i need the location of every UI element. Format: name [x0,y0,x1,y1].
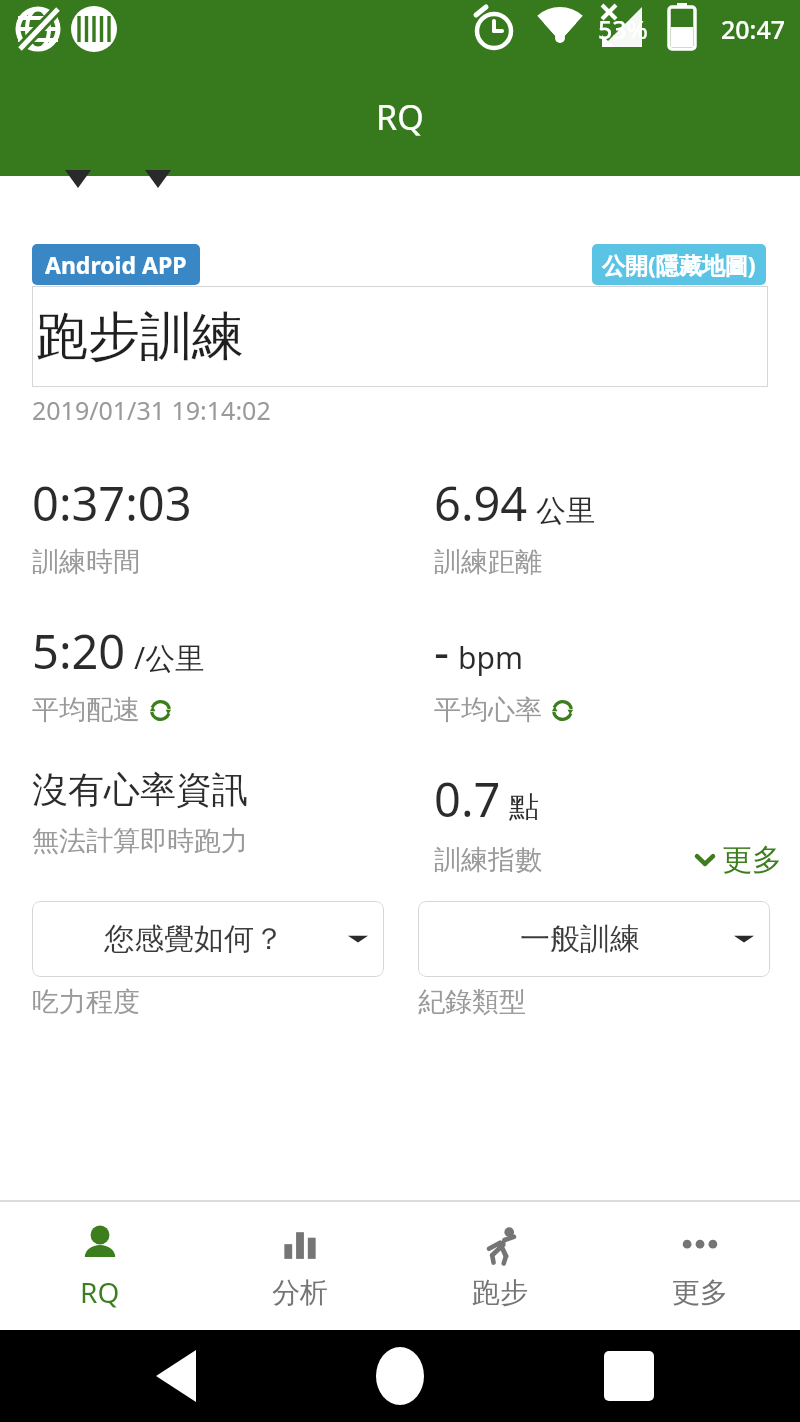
staticText: 平均配速 [32,693,140,727]
staticText: 0.7 [434,767,501,831]
staticText: Android APP [45,249,187,280]
staticText: 6.94 [434,471,528,535]
staticText: 53% [598,12,648,46]
button[interactable]: 沒有心率資訊 [32,767,400,858]
staticText: 訓練指數 [434,843,542,877]
button[interactable]: 公開(隱藏地圖) [592,244,766,285]
staticText: 更多 [672,1275,728,1310]
button[interactable]: 更多 [600,1202,800,1330]
button[interactable]: 6.94 [434,471,800,579]
button[interactable]: 更多 [692,841,782,879]
staticText: 更多 [722,841,782,879]
staticText: 分析 [272,1275,328,1310]
button[interactable]: Android APP [32,244,200,285]
staticText: 您感覺如何？ [104,920,284,958]
staticText: /公里 [134,637,206,678]
button[interactable]: 跑步訓練 [32,286,768,387]
staticText: 跑步 [472,1275,528,1310]
staticText: 公里 [536,492,596,530]
button[interactable]: 您感覺如何？ [32,901,384,977]
button[interactable]: - [434,619,800,727]
other: Refresh [549,697,576,724]
staticText: bpm [458,637,523,678]
staticText: 2019/01/31 19:14:02 [32,393,271,427]
staticText: 吃力程度 [32,985,140,1019]
staticText: 訓練距離 [434,545,542,579]
staticText: 沒有心率資訊 [32,767,248,812]
staticText: RQ [80,1273,120,1311]
staticText: 無法計算即時跑力 [32,824,248,858]
staticText: RQ [376,94,424,140]
staticText: 平均心率 [434,693,542,727]
other: Refresh [147,697,174,724]
button[interactable]: 跑步 [400,1202,600,1330]
staticText: 訓練時間 [32,545,140,579]
button[interactable]: 分析 [200,1202,400,1330]
button[interactable]: 5:20 [32,619,400,727]
button[interactable]: RQ [0,1202,200,1330]
button[interactable]: 一般訓練 [418,901,770,977]
staticText: 5:20 [32,619,126,683]
staticText: 跑步訓練 [36,304,244,370]
staticText: 公開(隱藏地圖) [602,249,756,280]
staticText: - [434,619,450,683]
staticText: 紀錄類型 [418,985,526,1019]
button[interactable]: 0:37:03 [32,471,400,579]
staticText: 點 [509,788,539,826]
staticText: 一般訓練 [520,920,640,958]
staticText: 20:47 [721,12,786,46]
staticText: 0:37:03 [32,471,192,535]
